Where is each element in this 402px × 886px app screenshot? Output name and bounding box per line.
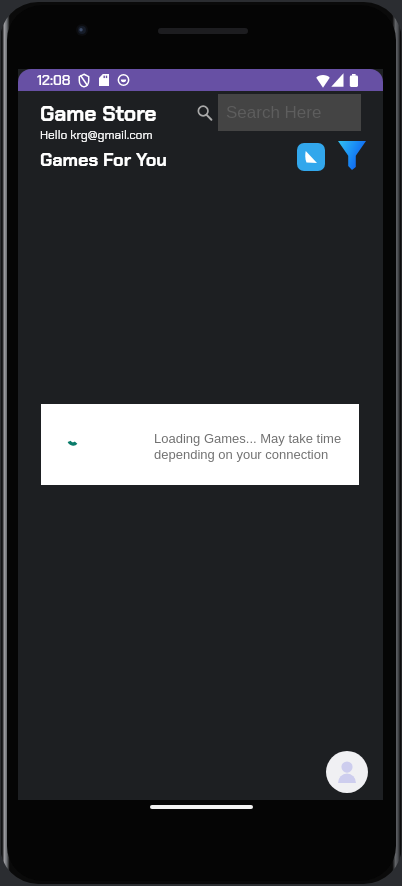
button[interactable]: Search [193, 101, 215, 123]
staticText: Games For You [40, 148, 167, 171]
button[interactable]: Profile [326, 751, 368, 793]
staticText: Search Here [226, 103, 322, 122]
staticText: depending on your connection [154, 447, 329, 462]
staticText: Hello krg@gmail.com [40, 127, 153, 143]
button[interactable]: Search Here [218, 94, 361, 131]
button[interactable]: Sort [297, 143, 325, 171]
button[interactable]: Filter [335, 138, 369, 172]
staticText: Game Store [40, 100, 157, 127]
button[interactable]: Loading Games... May take time [41, 404, 359, 485]
staticText: Loading Games... May take time [154, 431, 342, 446]
staticText: 12:08 [37, 71, 71, 89]
